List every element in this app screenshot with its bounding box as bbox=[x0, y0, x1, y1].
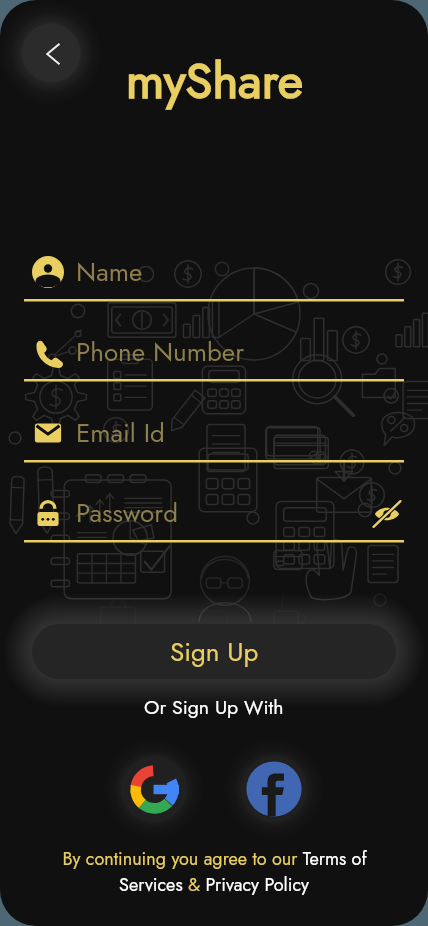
staticText: Or Sign Up With bbox=[144, 693, 284, 721]
staticText: Email Id bbox=[76, 414, 165, 452]
button[interactable]: Phone Number bbox=[24, 332, 404, 382]
staticText: Services & Privacy Policy bbox=[119, 872, 309, 898]
button[interactable]: Sign up with Facebook bbox=[241, 756, 307, 822]
button[interactable]: Toggle password visibility bbox=[370, 497, 404, 531]
staticText: By continuing you agree to our Terms of bbox=[62, 846, 367, 872]
button[interactable]: Sign up with Google bbox=[121, 756, 187, 822]
staticText: Phone Number bbox=[76, 333, 245, 371]
staticText: Password bbox=[76, 494, 179, 532]
staticText: myShare bbox=[126, 46, 303, 117]
button[interactable]: Sign Up bbox=[32, 624, 396, 679]
button[interactable]: Password bbox=[24, 493, 404, 543]
staticText: Sign Up bbox=[170, 633, 259, 671]
staticText: Name bbox=[76, 253, 143, 291]
button[interactable]: Name bbox=[24, 252, 404, 302]
button[interactable]: Back bbox=[23, 25, 80, 82]
button[interactable]: Email Id bbox=[24, 413, 404, 463]
